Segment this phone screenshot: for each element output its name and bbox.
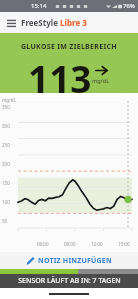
staticText: 300 xyxy=(2,123,10,129)
staticText: GLUKOSE IM ZIELBEREICH xyxy=(21,42,117,52)
staticText: 150 xyxy=(2,180,10,186)
staticText: mg/dL xyxy=(92,77,110,84)
staticText: 113 xyxy=(28,53,92,97)
staticText: NOTIZ HINZUFÜGEN xyxy=(38,256,112,266)
staticText: 06:00 xyxy=(37,241,49,247)
staticText: SENSOR LÄUFT AB IN: 7 TAGEN xyxy=(18,276,121,286)
button[interactable]: NOTIZ HINZUFÜGEN xyxy=(0,252,138,269)
staticText: 15:00 xyxy=(118,241,130,247)
staticText: 250 xyxy=(2,142,10,148)
staticText: 12:00 xyxy=(91,241,103,247)
staticText: 200 xyxy=(2,161,10,167)
staticText: 100 xyxy=(2,199,10,205)
staticText: 76% xyxy=(123,2,135,10)
staticText: FreeStyle Libre 3 xyxy=(21,17,87,28)
button[interactable]: Menu xyxy=(4,16,18,30)
staticText: mg/dL xyxy=(2,97,16,103)
staticText: 350 xyxy=(2,104,10,110)
staticText: 50 xyxy=(2,218,8,224)
staticText: 15:14 xyxy=(31,2,47,10)
staticText: 09:00 xyxy=(64,241,76,247)
